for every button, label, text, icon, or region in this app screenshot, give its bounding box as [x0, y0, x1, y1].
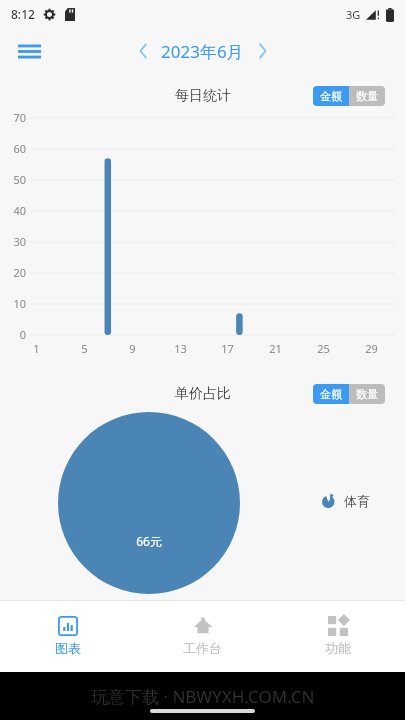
staticText: 0 — [19, 327, 26, 342]
button[interactable]: 数量 — [349, 384, 385, 404]
button[interactable]: 工作台 — [135, 600, 270, 672]
staticText: 70 — [13, 110, 26, 125]
staticText: 29 — [365, 341, 378, 356]
staticText: 60 — [13, 141, 26, 156]
button[interactable]: 数量 — [349, 86, 385, 106]
staticText: 25 — [317, 341, 330, 356]
staticText: 金额 — [320, 387, 342, 401]
staticText: 5 — [81, 341, 88, 356]
staticText: 功能 — [325, 640, 351, 656]
staticText: 体育 — [344, 493, 370, 509]
staticText: 每日统计 — [175, 87, 231, 105]
staticText: 9 — [129, 341, 136, 356]
staticText: 工作台 — [183, 640, 222, 656]
button[interactable]: 图表 — [0, 600, 135, 672]
staticText: 40 — [13, 203, 26, 218]
staticText: 17 — [221, 341, 234, 356]
staticText: 50 — [13, 172, 26, 187]
staticText: 30 — [13, 234, 26, 249]
button[interactable]: 金额 — [313, 384, 349, 404]
staticText: 20 — [13, 265, 26, 280]
button[interactable]: Menu — [8, 30, 50, 72]
staticText: 1 — [33, 341, 40, 356]
button[interactable]: 体育 — [322, 493, 370, 509]
staticText: 数量 — [356, 89, 378, 103]
staticText: 金额 — [320, 89, 342, 103]
staticText: 8:12 — [11, 6, 35, 22]
staticText: 2023年6月 — [161, 40, 244, 63]
staticText: 单价占比 — [175, 385, 231, 403]
staticText: 3G — [346, 7, 361, 22]
button[interactable]: 金额 — [313, 86, 349, 106]
button[interactable]: Next month — [247, 33, 277, 69]
staticText: 玩意下载 · NBWYXH.COM.CN — [91, 685, 315, 708]
staticText: 图表 — [55, 640, 81, 656]
button[interactable]: 2023年6月 — [158, 40, 247, 63]
button[interactable]: 功能 — [270, 600, 405, 672]
button[interactable]: Previous month — [128, 33, 158, 69]
staticText: 13 — [174, 341, 187, 356]
staticText: 10 — [13, 296, 26, 311]
staticText: 21 — [269, 341, 282, 356]
staticText: 数量 — [356, 387, 378, 401]
staticText: 66元 — [136, 533, 162, 549]
